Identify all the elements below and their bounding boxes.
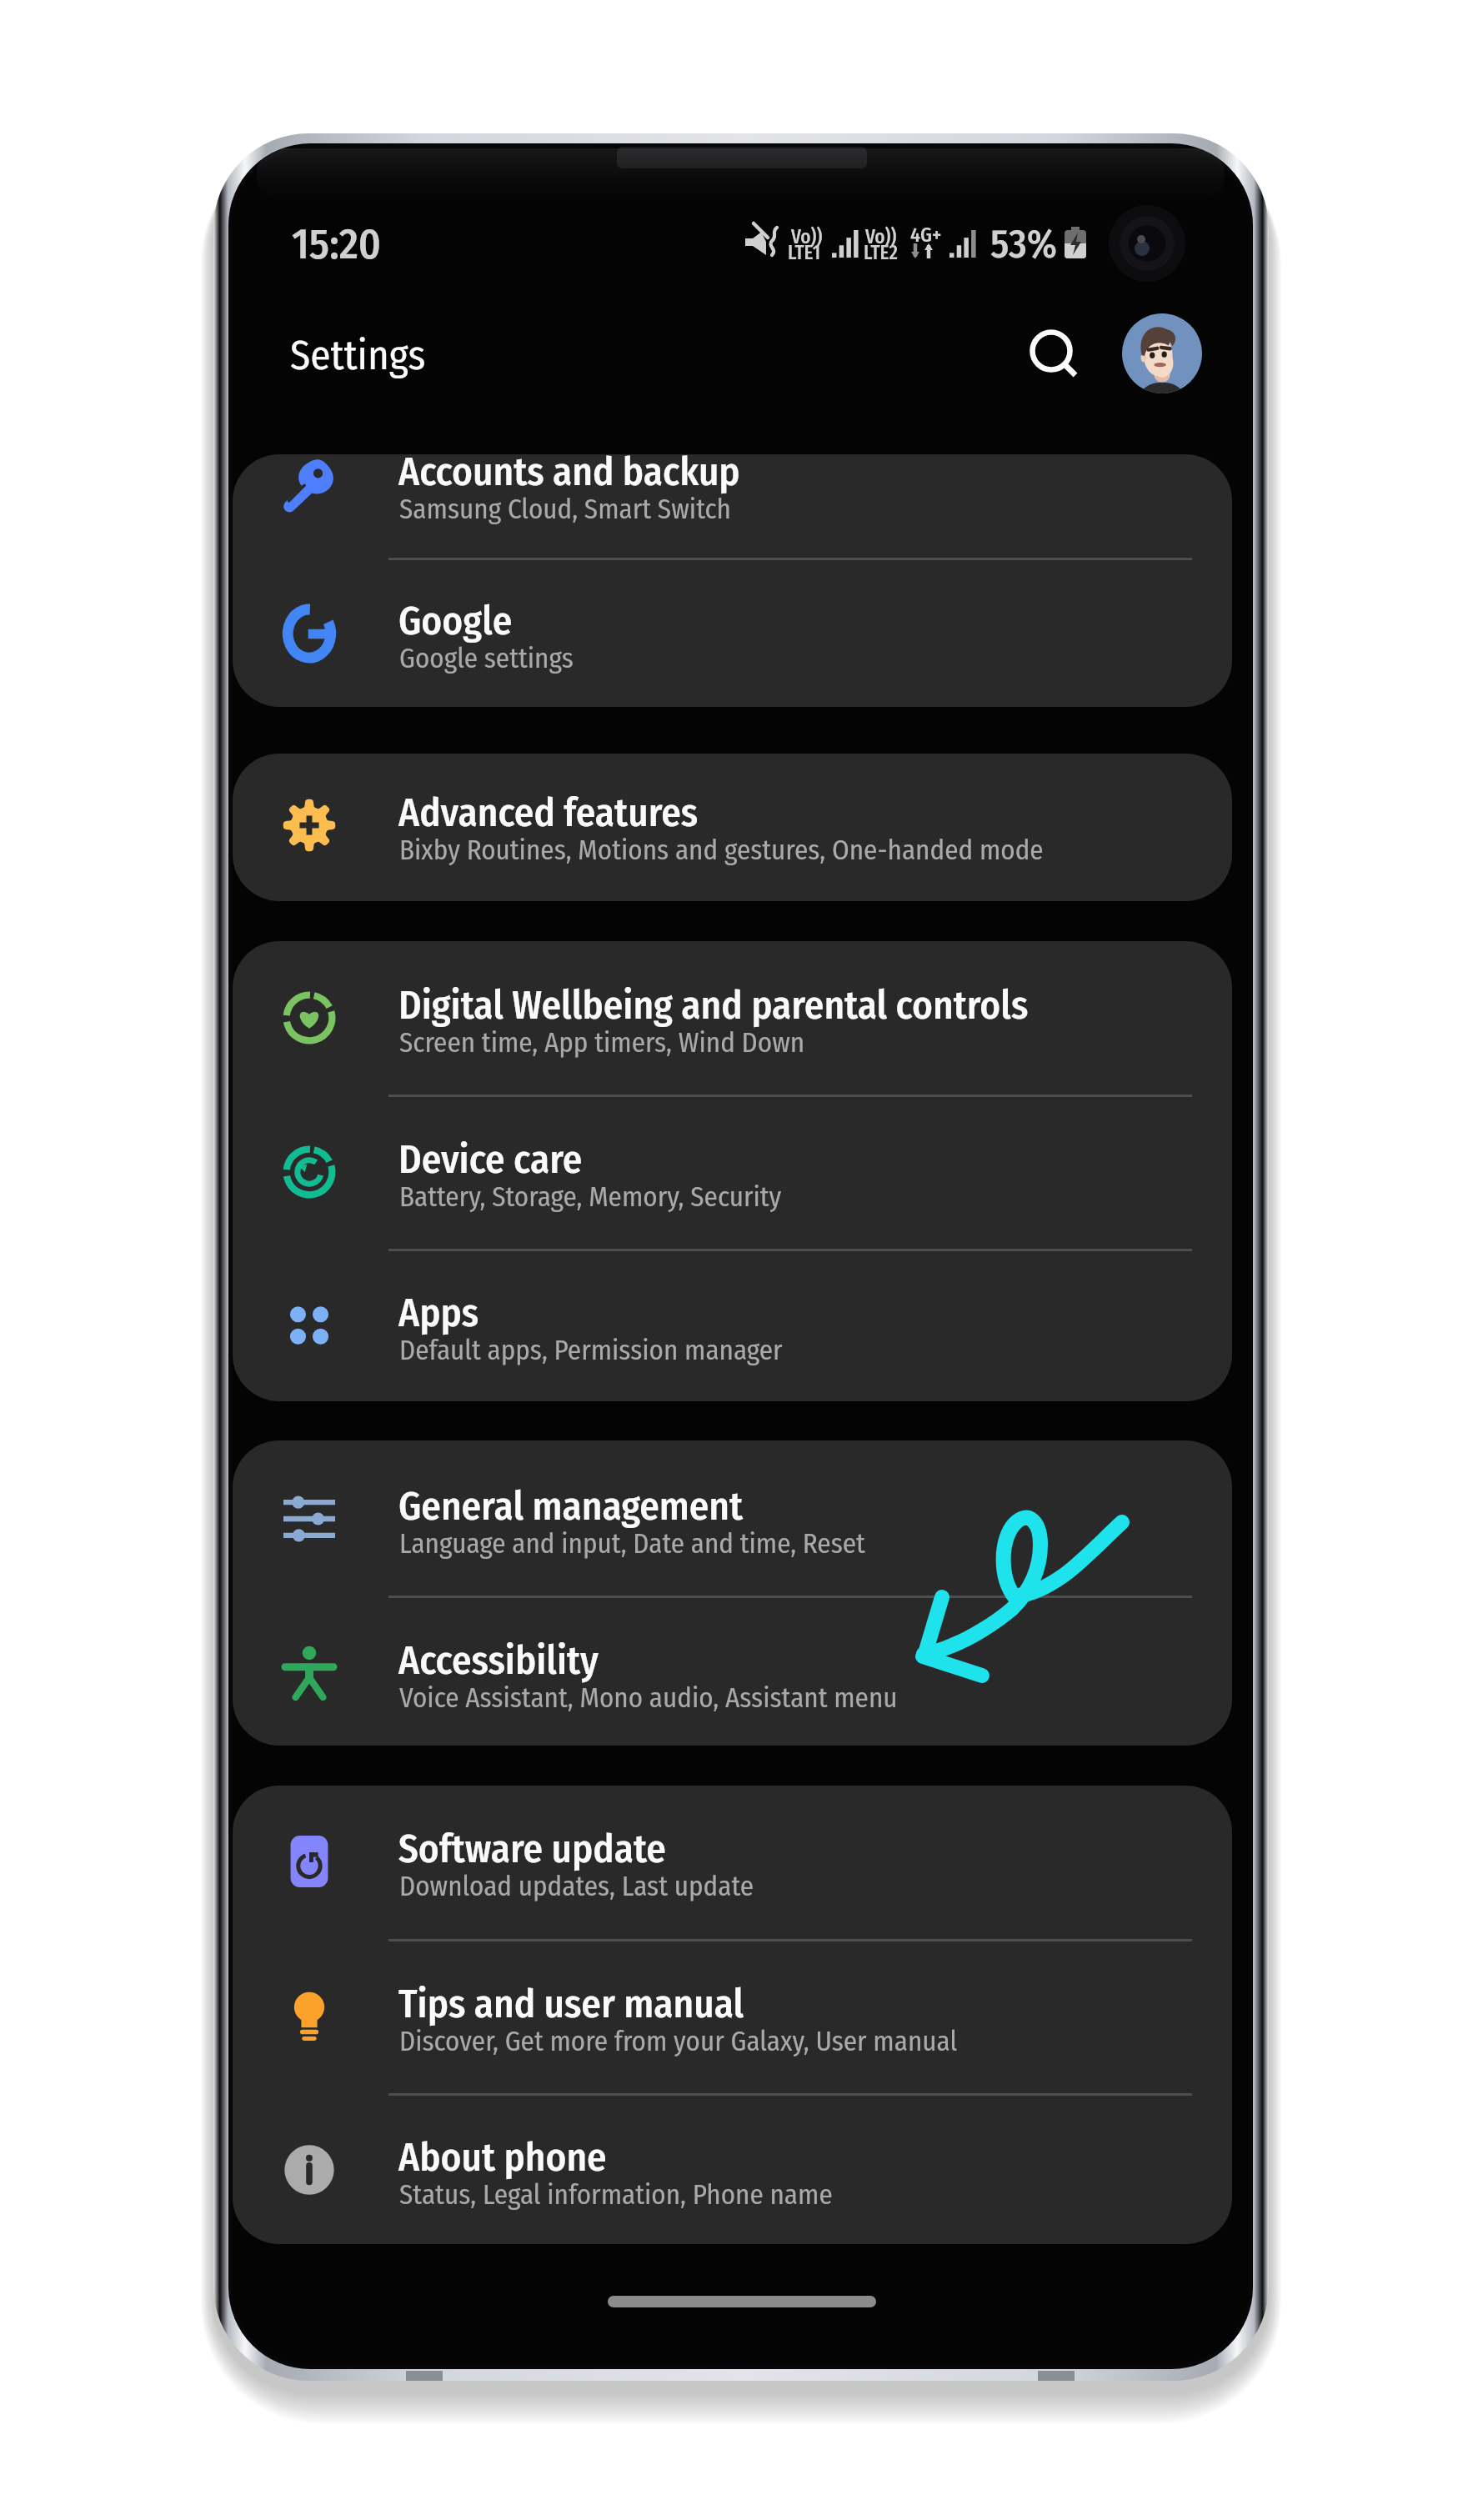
staticText: Settings <box>290 331 426 380</box>
button[interactable]: Tips and user manual <box>233 1940 1232 2094</box>
staticText: Software update <box>398 1826 666 1872</box>
staticText: Battery, Storage, Memory, Security <box>399 1180 782 1214</box>
staticText: Digital Wellbeing and parental controls <box>398 982 1029 1029</box>
button[interactable]: Apps <box>233 1249 1232 1401</box>
staticText: Default apps, Permission manager <box>399 1334 783 1367</box>
staticText: LTE1 <box>788 241 821 264</box>
button[interactable]: Accessibility <box>233 1596 1232 1746</box>
staticText: Download updates, Last update <box>399 1870 754 1903</box>
staticText: Screen time, App timers, Wind Down <box>399 1026 805 1060</box>
button[interactable]: Advanced features <box>233 754 1232 901</box>
staticText: General management <box>398 1483 744 1530</box>
button[interactable]: Accounts and backup <box>233 454 1232 562</box>
staticText: Accessibility <box>398 1637 599 1684</box>
staticText: Accounts and backup <box>398 448 740 495</box>
staticText: Vo)) <box>865 225 897 248</box>
staticText: 4G+ <box>910 223 942 248</box>
staticText: Language and input, Date and time, Reset <box>399 1527 865 1561</box>
staticText: Google settings <box>399 642 574 675</box>
button[interactable]: About phone <box>233 2093 1232 2244</box>
staticText: 53% <box>990 221 1058 268</box>
button[interactable]: Profile <box>1122 313 1202 393</box>
staticText: Tips and user manual <box>398 1981 744 2027</box>
staticText: Samsung Cloud, Smart Switch <box>399 493 731 526</box>
staticText: Status, Legal information, Phone name <box>399 2178 833 2212</box>
staticText: Vo)) <box>791 225 823 248</box>
button[interactable]: Search <box>1013 314 1090 391</box>
button[interactable]: Google <box>233 557 1232 707</box>
staticText: 15:20 <box>292 218 382 269</box>
staticText: Discover, Get more from your Galaxy, Use… <box>399 2025 958 2058</box>
staticText: LTE2 <box>864 241 898 264</box>
button[interactable]: Software update <box>233 1786 1232 1939</box>
staticText: About phone <box>398 2134 607 2181</box>
staticText: Google <box>398 598 513 644</box>
staticText: Advanced features <box>398 789 699 836</box>
staticText: Bixby Routines, Motions and gestures, On… <box>399 834 1044 867</box>
staticText: Device care <box>398 1136 583 1183</box>
button[interactable]: General management <box>233 1442 1232 1596</box>
staticText: Apps <box>398 1290 479 1336</box>
staticText: Voice Assistant, Mono audio, Assistant m… <box>399 1681 898 1715</box>
button[interactable]: Digital Wellbeing and parental controls <box>233 941 1232 1095</box>
button[interactable]: Device care <box>233 1095 1232 1250</box>
